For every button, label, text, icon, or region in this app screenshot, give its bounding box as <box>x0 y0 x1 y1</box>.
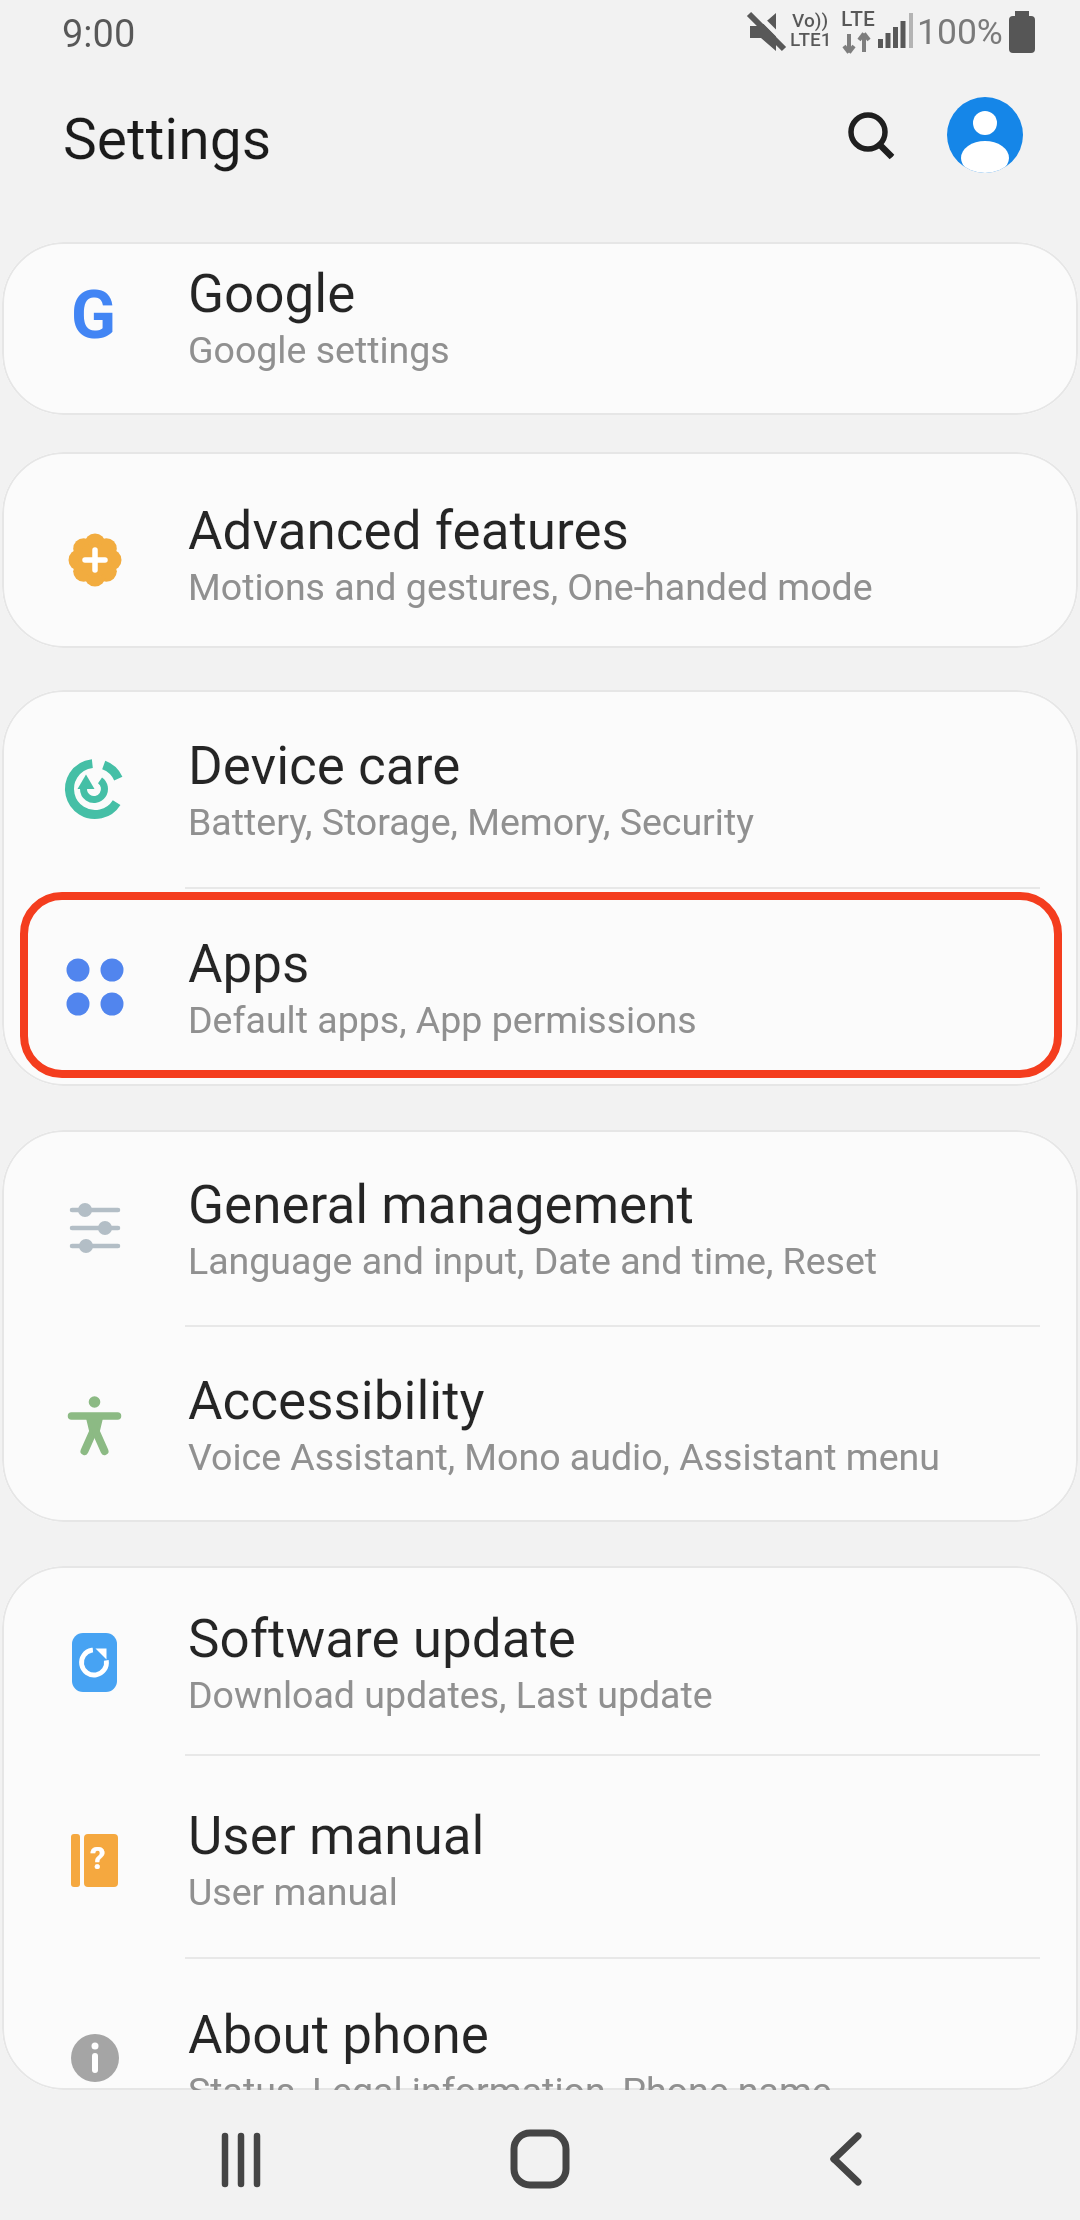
staticText: Download updates, Last update <box>188 1673 713 1717</box>
staticText: LTE1 <box>790 28 832 50</box>
staticText: User manual <box>188 1805 485 1867</box>
staticText: 100% <box>917 11 1003 53</box>
button[interactable] <box>2 242 1078 415</box>
button[interactable] <box>2 690 1078 888</box>
button[interactable] <box>947 97 1023 173</box>
staticText: General management <box>188 1174 694 1236</box>
staticText: ? <box>90 1840 106 1876</box>
button[interactable] <box>480 2100 600 2220</box>
staticText: Vo)) <box>792 9 829 31</box>
button[interactable] <box>2 1755 1078 1958</box>
staticText: 9:00 <box>62 12 136 57</box>
staticText: Software update <box>188 1608 576 1670</box>
button[interactable] <box>2 1130 1078 1326</box>
button[interactable] <box>2 888 1078 1086</box>
staticText: Default apps, App permissions <box>188 998 697 1042</box>
staticText: Accessibility <box>188 1370 485 1432</box>
button[interactable] <box>838 102 902 166</box>
button[interactable] <box>2 452 1078 648</box>
button[interactable] <box>2 1958 1078 2090</box>
staticText: User manual <box>188 1870 398 1914</box>
staticText: G <box>71 277 116 354</box>
staticText: Google <box>188 263 356 325</box>
button[interactable] <box>180 2100 300 2220</box>
staticText: Motions and gestures, One-handed mode <box>188 565 873 609</box>
staticText: LTE <box>841 7 875 32</box>
staticText: Status, Legal information, Phone name <box>188 2069 832 2090</box>
button[interactable] <box>2 1326 1078 1522</box>
staticText: Google settings <box>188 328 450 372</box>
staticText: Apps <box>188 933 310 995</box>
staticText: Device care <box>188 735 461 797</box>
staticText: Settings <box>63 106 272 173</box>
staticText: Voice Assistant, Mono audio, Assistant m… <box>188 1435 940 1479</box>
staticText: About phone <box>188 2004 489 2066</box>
staticText: Battery, Storage, Memory, Security <box>188 800 754 844</box>
staticText: Language and input, Date and time, Reset <box>188 1239 878 1283</box>
button[interactable] <box>2 1566 1078 1755</box>
staticText: Advanced features <box>188 500 629 562</box>
button[interactable] <box>780 2100 900 2220</box>
